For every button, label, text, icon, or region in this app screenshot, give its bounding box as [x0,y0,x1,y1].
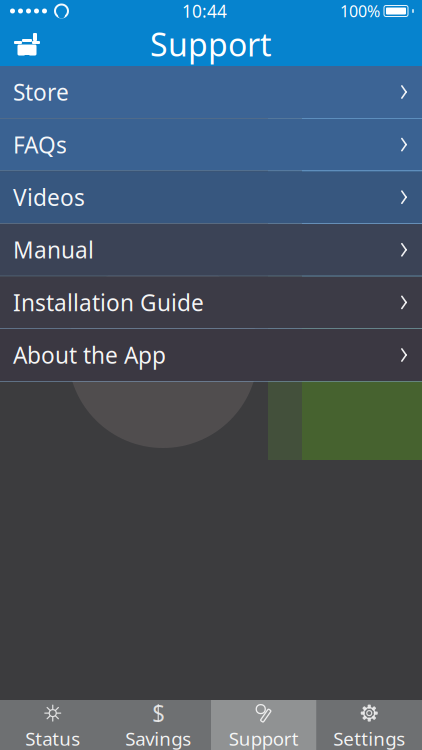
staticText: Settings [333,726,405,750]
staticText: Status [25,726,80,750]
button[interactable]: Status [0,700,105,750]
button[interactable]: Support [211,700,316,750]
staticText: 100% [340,0,380,22]
staticText: Support [150,23,272,65]
staticText: Installation Guide [13,287,204,317]
staticText: FAQs [13,129,67,160]
button[interactable]: Videos [0,171,422,223]
staticText: Store [13,77,69,107]
staticText: S [152,698,164,728]
button[interactable]: Manual [0,224,422,276]
button[interactable]: Store [0,66,422,118]
button[interactable]: About the App [0,329,422,381]
staticText: Videos [13,182,85,212]
button[interactable]: Installation Guide [0,276,422,328]
button[interactable]: Settings [316,700,422,750]
button[interactable]: FAQs [0,119,422,171]
staticText: Support [229,726,299,750]
staticText: About the App [13,340,166,370]
staticText: 10:44 [182,0,227,22]
button[interactable]: Home [0,22,54,66]
staticText: Savings [125,726,191,750]
staticText: Manual [13,235,94,265]
button[interactable]: S [105,700,211,750]
